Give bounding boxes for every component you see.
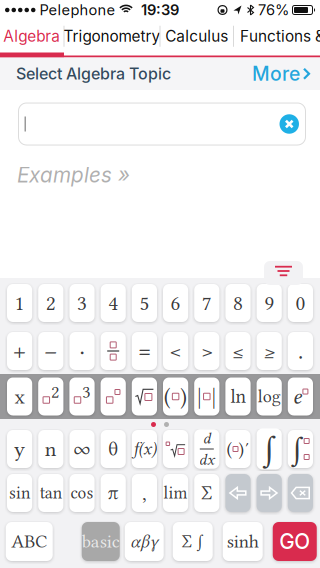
staticText: < xyxy=(170,338,182,364)
staticText: π xyxy=(108,482,119,504)
staticText: Σ ∫ xyxy=(182,531,204,552)
button[interactable]: − xyxy=(38,332,63,370)
staticText: ) xyxy=(180,384,187,409)
staticText: basic xyxy=(82,531,120,552)
button[interactable]: 3 xyxy=(69,377,95,415)
staticText: 8 xyxy=(233,291,243,315)
staticText: d xyxy=(203,429,211,447)
button[interactable] xyxy=(101,377,126,415)
button[interactable]: Examples » xyxy=(17,162,130,187)
button[interactable]: x xyxy=(7,377,32,415)
button[interactable]: Σ xyxy=(194,474,219,512)
button[interactable] xyxy=(264,261,303,285)
button[interactable]: 2 xyxy=(38,377,63,415)
staticText: ∫ xyxy=(263,428,276,469)
button[interactable]: ln xyxy=(225,377,251,415)
button[interactable] xyxy=(163,430,188,468)
staticText: ∞ xyxy=(73,437,90,461)
button[interactable]: ∞ xyxy=(69,430,95,468)
button[interactable]: αβγ xyxy=(125,522,164,561)
button[interactable]: Algebra xyxy=(0,20,63,52)
button[interactable]: ∫ xyxy=(288,430,313,468)
button[interactable]: ≤ xyxy=(225,332,251,370)
button[interactable]: π xyxy=(101,474,126,512)
staticText: 76% xyxy=(258,1,289,19)
button[interactable]: 8 xyxy=(225,284,251,322)
button[interactable]: More xyxy=(252,62,320,85)
button[interactable]: e xyxy=(288,377,313,415)
button[interactable]: < xyxy=(163,332,188,370)
button[interactable]: n xyxy=(38,430,63,468)
button[interactable]: GO xyxy=(273,522,317,561)
button[interactable]: = xyxy=(132,332,157,370)
staticText: ln xyxy=(230,385,245,407)
button[interactable]: Calculus xyxy=(160,20,233,52)
staticText: Trigonometry xyxy=(63,27,160,46)
button[interactable]: 2 xyxy=(38,284,63,322)
staticText: sinh xyxy=(227,531,259,552)
button[interactable]: cos xyxy=(69,474,95,512)
staticText: 0 xyxy=(295,291,305,315)
button[interactable] xyxy=(132,377,157,415)
staticText: e xyxy=(292,384,301,409)
button[interactable]: Trigonometry xyxy=(64,20,159,52)
button[interactable] xyxy=(257,474,282,512)
staticText: Functions & Gr xyxy=(240,27,320,46)
button[interactable]: > xyxy=(194,332,219,370)
button[interactable]: 3 xyxy=(69,284,95,322)
button[interactable]: 4 xyxy=(101,284,126,322)
button[interactable]: 1 xyxy=(7,284,32,322)
button[interactable]: , xyxy=(132,474,157,512)
staticText: ( xyxy=(226,438,232,460)
button[interactable]: ABC xyxy=(6,522,53,561)
button[interactable] xyxy=(101,332,126,370)
button[interactable]: log xyxy=(257,377,282,415)
button[interactable] xyxy=(288,474,313,512)
button[interactable]: ≥ xyxy=(257,332,282,370)
staticText: 2 xyxy=(46,291,56,315)
button[interactable]: 6 xyxy=(163,284,188,322)
button[interactable]: · xyxy=(69,332,95,370)
button[interactable] xyxy=(279,114,299,134)
staticText: ( xyxy=(164,384,171,409)
button[interactable]: 0 xyxy=(288,284,313,322)
staticText: 6 xyxy=(171,291,181,315)
staticText: More xyxy=(252,62,300,85)
button[interactable]: sin xyxy=(7,474,32,512)
staticText: . xyxy=(298,337,303,365)
button[interactable]: 7 xyxy=(194,284,219,322)
staticText: y xyxy=(14,437,25,461)
button[interactable]: Functions & Gr xyxy=(234,20,320,52)
staticText: θ xyxy=(108,438,118,460)
button[interactable]: sinh xyxy=(223,522,263,561)
staticText: GO xyxy=(279,529,310,554)
staticText: 9 xyxy=(264,291,274,315)
button[interactable]: f(x) xyxy=(132,430,157,468)
button[interactable] xyxy=(225,474,251,512)
button[interactable]: 9 xyxy=(257,284,282,322)
button[interactable]: 5 xyxy=(132,284,157,322)
staticText: 7 xyxy=(202,291,212,315)
button[interactable]: ( xyxy=(225,430,251,468)
button[interactable]: . xyxy=(288,332,313,370)
staticText: f(x) xyxy=(133,439,156,459)
staticText: 3 xyxy=(82,382,90,402)
button[interactable]: y xyxy=(7,430,32,468)
button[interactable]: tan xyxy=(38,474,63,512)
button[interactable]: Σ ∫ xyxy=(173,522,213,561)
button[interactable]: lim xyxy=(163,474,188,512)
staticText: x xyxy=(15,384,25,409)
button[interactable]: ∫ xyxy=(257,430,282,468)
staticText: Calculus xyxy=(165,27,228,46)
button[interactable]: d xyxy=(194,430,219,468)
button[interactable]: ( xyxy=(163,377,188,415)
staticText: 3 xyxy=(77,291,87,315)
button[interactable]: θ xyxy=(101,430,126,468)
staticText: 5 xyxy=(139,291,149,315)
button[interactable] xyxy=(18,102,306,145)
button[interactable]: | xyxy=(194,377,219,415)
button[interactable]: basic xyxy=(82,522,120,561)
staticText: cos xyxy=(70,483,93,503)
button[interactable]: + xyxy=(7,332,32,370)
staticText: sin xyxy=(9,483,30,503)
